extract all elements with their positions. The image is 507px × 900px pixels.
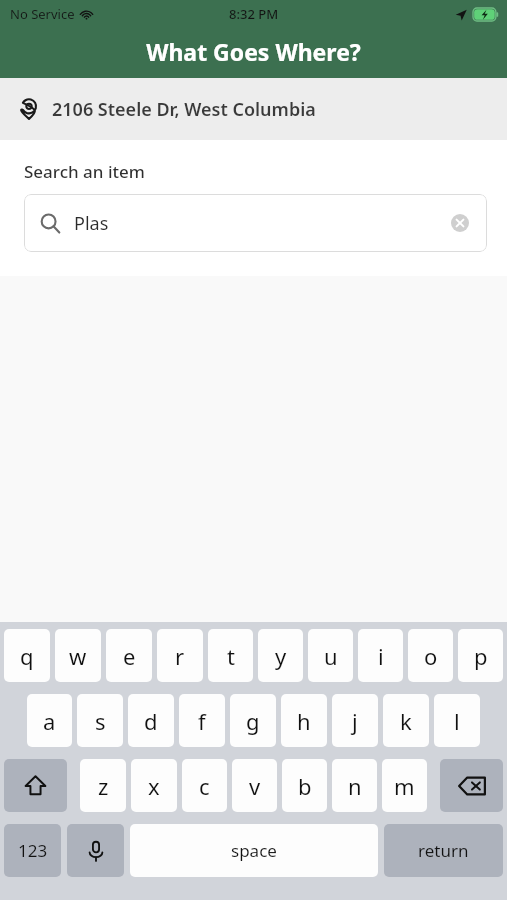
- button[interactable]: x: [131, 759, 177, 812]
- staticText: e: [123, 641, 136, 671]
- button[interactable]: 2106 Steele Dr, West Columbia: [0, 78, 507, 140]
- button[interactable]: d: [128, 694, 174, 747]
- button[interactable]: i: [358, 629, 403, 682]
- button[interactable]: Dictation: [67, 824, 124, 877]
- staticText: No Service: [10, 5, 75, 23]
- button[interactable]: r: [157, 629, 203, 682]
- button[interactable]: q: [4, 629, 50, 682]
- button[interactable]: h: [281, 694, 327, 747]
- button[interactable]: v: [232, 759, 277, 812]
- button[interactable]: m: [382, 759, 427, 812]
- button[interactable]: z: [80, 759, 126, 812]
- staticText: i: [378, 641, 384, 671]
- staticText: x: [148, 771, 160, 801]
- staticText: p: [474, 641, 488, 671]
- staticText: y: [275, 641, 287, 671]
- staticText: k: [400, 706, 412, 736]
- button[interactable]: Shift: [4, 759, 67, 812]
- staticText: space: [231, 839, 277, 862]
- button[interactable]: k: [383, 694, 429, 747]
- staticText: q: [20, 641, 34, 671]
- button[interactable]: a: [27, 694, 72, 747]
- button[interactable]: w: [55, 629, 101, 682]
- staticText: c: [199, 771, 210, 801]
- staticText: n: [348, 771, 362, 801]
- button[interactable]: 123: [4, 824, 61, 877]
- button[interactable]: space: [130, 824, 378, 877]
- staticText: b: [298, 771, 312, 801]
- staticText: Plas: [74, 211, 109, 236]
- staticText: r: [175, 641, 185, 671]
- staticText: a: [43, 706, 56, 736]
- staticText: w: [69, 641, 87, 671]
- staticText: o: [424, 641, 438, 671]
- button[interactable]: b: [282, 759, 327, 812]
- staticText: t: [227, 641, 235, 671]
- staticText: s: [95, 706, 106, 736]
- staticText: d: [144, 706, 158, 736]
- staticText: What Goes Where?: [146, 36, 361, 67]
- staticText: v: [249, 771, 261, 801]
- staticText: m: [394, 771, 415, 801]
- button[interactable]: return: [384, 824, 503, 877]
- staticText: f: [198, 706, 206, 736]
- button[interactable]: s: [77, 694, 123, 747]
- button[interactable]: f: [179, 694, 225, 747]
- staticText: j: [352, 706, 358, 736]
- button[interactable]: o: [408, 629, 453, 682]
- staticText: 123: [18, 839, 48, 862]
- staticText: u: [324, 641, 338, 671]
- staticText: h: [297, 706, 311, 736]
- staticText: g: [246, 706, 260, 736]
- button[interactable]: l: [434, 694, 480, 747]
- button[interactable]: j: [332, 694, 378, 747]
- staticText: return: [418, 839, 469, 862]
- staticText: z: [98, 771, 109, 801]
- button[interactable]: c: [182, 759, 227, 812]
- staticText: Search an item: [24, 160, 145, 183]
- button[interactable]: n: [332, 759, 377, 812]
- button[interactable]: Plas: [24, 194, 487, 252]
- staticText: 2106 Steele Dr, West Columbia: [52, 97, 316, 122]
- staticText: l: [454, 706, 460, 736]
- button[interactable]: y: [258, 629, 303, 682]
- button[interactable]: p: [458, 629, 503, 682]
- button[interactable]: u: [308, 629, 353, 682]
- button[interactable]: t: [208, 629, 253, 682]
- button[interactable]: Clear search: [449, 212, 471, 234]
- button[interactable]: g: [230, 694, 276, 747]
- button[interactable]: e: [106, 629, 152, 682]
- staticText: 8:32 PM: [229, 5, 279, 23]
- button[interactable]: Backspace: [440, 759, 503, 812]
